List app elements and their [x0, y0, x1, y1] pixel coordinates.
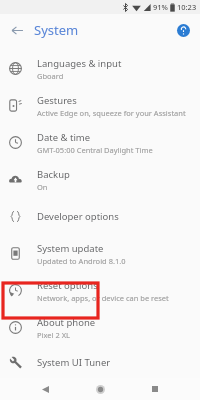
- button[interactable]: Gestures: [0, 87, 200, 124]
- button[interactable]: Home: [90, 379, 110, 399]
- button[interactable]: Languages & input: [0, 50, 200, 87]
- staticText: Developer options: [37, 210, 119, 223]
- staticText: 10:23: [177, 2, 197, 12]
- button[interactable]: Recents: [145, 379, 165, 399]
- button[interactable]: Reset options: [0, 272, 200, 309]
- staticText: Languages & input: [37, 57, 122, 70]
- staticText: System UI Tuner: [37, 356, 111, 369]
- staticText: System update: [37, 242, 104, 255]
- staticText: Active Edge on, squeeze for your Assista…: [37, 108, 186, 118]
- staticText: Backup: [37, 168, 70, 181]
- button[interactable]: System UI Tuner: [0, 346, 200, 378]
- staticText: On: [37, 182, 48, 192]
- staticText: About phone: [37, 316, 96, 329]
- staticText: Pixel 2 XL: [37, 330, 70, 340]
- staticText: System: [34, 21, 79, 39]
- button[interactable]: System update: [0, 235, 200, 272]
- button[interactable]: Back: [6, 19, 28, 41]
- staticText: GMT-05:00 Central Daylight Time: [37, 145, 153, 155]
- staticText: Gboard: [37, 71, 64, 81]
- staticText: Date & time: [37, 131, 91, 144]
- staticText: Gestures: [37, 94, 77, 107]
- button[interactable]: Date & time: [0, 124, 200, 161]
- staticText: 91%: [153, 2, 168, 12]
- staticText: Reset options: [37, 279, 98, 292]
- button[interactable]: Help: [173, 20, 193, 40]
- button[interactable]: About phone: [0, 309, 200, 346]
- button[interactable]: Developer options: [0, 198, 200, 235]
- button[interactable]: Backup: [0, 161, 200, 198]
- staticText: Updated to Android 8.1.0: [37, 256, 126, 266]
- staticText: Network, apps, or device can be reset: [37, 293, 169, 303]
- button[interactable]: Back: [35, 379, 55, 399]
